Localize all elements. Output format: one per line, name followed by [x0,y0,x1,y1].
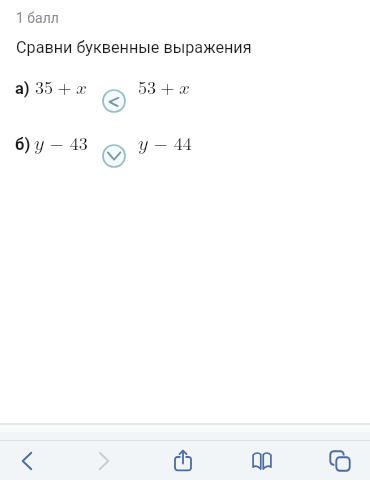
staticText: 35 + 𝑥 [35,74,87,100]
staticText: Сравни буквенные выражения [16,38,252,57]
button[interactable]: Share [161,441,205,480]
button[interactable]: Less than sign [102,89,126,113]
staticText: 53 + 𝑥 [138,74,190,100]
staticText: a) [15,79,30,98]
staticText: 𝑦 − 44 [138,130,192,156]
staticText: 1 балл [16,10,59,26]
button[interactable]: Back [5,441,49,480]
button[interactable]: Bookmarks [240,441,284,480]
button[interactable]: Choose comparison sign [102,144,126,168]
button[interactable]: Forward [82,441,126,480]
staticText: 𝑦 − 43 [34,130,88,156]
button[interactable]: Tabs [318,441,362,480]
staticText: б) [15,135,31,154]
